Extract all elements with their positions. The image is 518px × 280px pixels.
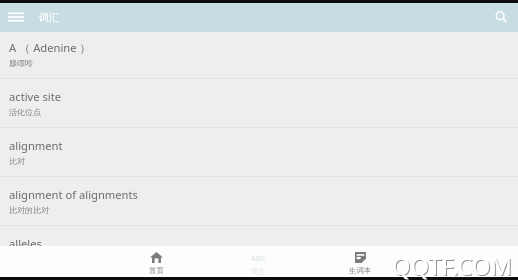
staticText: active site: [9, 89, 62, 104]
staticText: QQTF.COM: [392, 250, 512, 280]
staticText: alignment: [9, 138, 63, 153]
button[interactable]: A （ Adenine ）: [0, 32, 518, 79]
button[interactable]: 生词本: [309, 246, 411, 277]
staticText: 腺嘌呤: [9, 58, 33, 68]
button[interactable]: 首页: [105, 246, 207, 277]
staticText: 首页: [149, 266, 164, 275]
button[interactable]: ABC: [207, 246, 309, 277]
button[interactable]: Search: [489, 5, 513, 29]
button[interactable]: alignment: [0, 128, 518, 177]
button[interactable]: Open navigation drawer: [4, 6, 28, 30]
staticText: QQTF.COM: [393, 251, 513, 280]
staticText: ABC: [251, 253, 266, 263]
staticText: 词汇: [251, 267, 266, 276]
staticText: 生词本: [349, 266, 372, 275]
staticText: 活化位点: [9, 107, 41, 117]
button[interactable]: alignment of alignments: [0, 177, 518, 226]
staticText: 词汇: [39, 11, 59, 24]
staticText: A （ Adenine ）: [9, 40, 91, 55]
button[interactable]: alleles: [0, 226, 518, 246]
staticText: alleles: [9, 236, 42, 246]
staticText: 比对: [9, 156, 25, 166]
staticText: alignment of alignments: [9, 187, 138, 202]
button[interactable]: active site: [0, 79, 518, 128]
staticText: 比对的比对: [9, 205, 49, 215]
